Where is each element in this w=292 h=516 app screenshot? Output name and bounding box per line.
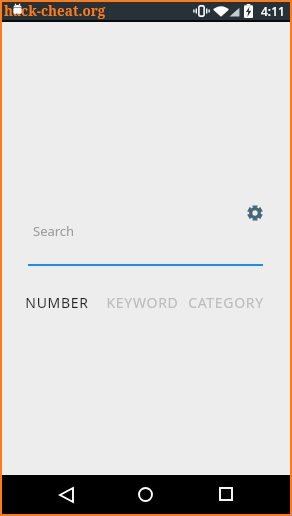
- staticText: KEYWORD: [106, 293, 179, 312]
- staticText: 4:11: [261, 3, 285, 19]
- button[interactable]: Search: [28, 219, 263, 273]
- staticText: hack-cheat.org: [4, 2, 106, 20]
- button[interactable]: Settings: [245, 203, 265, 223]
- button[interactable]: KEYWORD: [106, 288, 179, 316]
- button[interactable]: Back: [48, 477, 84, 513]
- button[interactable]: Home: [127, 476, 163, 512]
- button[interactable]: CATEGORY: [188, 288, 264, 316]
- button[interactable]: Recent apps: [208, 476, 244, 512]
- staticText: CATEGORY: [188, 293, 264, 312]
- staticText: Search: [33, 222, 75, 240]
- staticText: NUMBER: [25, 293, 89, 312]
- button[interactable]: NUMBER: [25, 288, 89, 316]
